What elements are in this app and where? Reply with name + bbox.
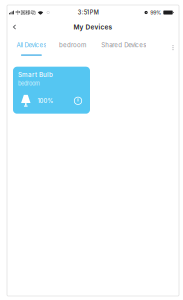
staticText: My Devices <box>73 23 112 31</box>
staticText: All Devices <box>16 41 46 49</box>
button[interactable]: bedroom <box>59 40 86 56</box>
staticText: Shared Devices <box>101 41 146 49</box>
staticText: bedroom <box>59 41 86 49</box>
button[interactable]: All Devices <box>16 40 46 56</box>
staticText: 100% <box>37 97 53 104</box>
staticText: 99% <box>150 9 161 16</box>
staticText: 3:51 PM <box>78 9 99 16</box>
staticText: bedroom <box>18 80 40 87</box>
button[interactable]: Back <box>7 19 22 34</box>
staticText: Smart Bulb <box>18 71 53 78</box>
button[interactable]: Smart Bulb <box>13 67 90 114</box>
button[interactable]: More options <box>167 41 178 55</box>
staticText: 中国移动 <box>15 9 35 16</box>
button[interactable]: Shared Devices <box>101 40 146 56</box>
